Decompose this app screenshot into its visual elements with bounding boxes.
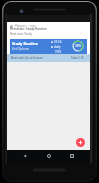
staticText: 33% bbox=[75, 44, 81, 48]
staticText: Next task: Go to lecture bbox=[11, 56, 43, 60]
button[interactable]: Planner bbox=[7, 22, 90, 62]
staticText: daily bbox=[54, 45, 61, 49]
button[interactable]: Recents bbox=[66, 150, 78, 162]
staticText: Tasks 1/3 bbox=[71, 56, 84, 60]
staticText: Planner bbox=[15, 24, 26, 28]
staticText: 7/10 bbox=[55, 50, 62, 54]
staticText: Study Routine bbox=[12, 41, 38, 46]
button[interactable]: Add task bbox=[76, 138, 85, 147]
staticText: Next task: Study bbox=[10, 32, 32, 36]
staticText: Get Diploma bbox=[12, 47, 29, 51]
button[interactable]: Back bbox=[19, 150, 31, 162]
button[interactable]: Home bbox=[43, 150, 55, 162]
staticText: Reminder: Study Routine bbox=[10, 27, 47, 31]
staticText: • now bbox=[28, 24, 36, 28]
button[interactable]: Study Routine bbox=[10, 39, 87, 54]
staticText: 21:14 bbox=[54, 40, 62, 44]
